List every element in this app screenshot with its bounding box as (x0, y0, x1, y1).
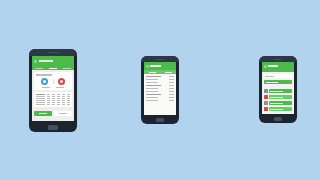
button[interactable] (144, 70, 160, 74)
button[interactable] (264, 101, 292, 105)
button[interactable] (146, 100, 174, 101)
button[interactable] (146, 76, 174, 77)
button[interactable] (264, 95, 292, 99)
button[interactable] (146, 82, 174, 83)
button[interactable] (34, 92, 72, 107)
button[interactable] (264, 89, 292, 93)
button[interactable] (146, 97, 174, 98)
button[interactable] (54, 111, 72, 116)
button[interactable]: Home (48, 125, 58, 130)
button[interactable] (32, 66, 46, 70)
button[interactable] (146, 94, 174, 95)
button[interactable]: Home (156, 118, 164, 122)
button[interactable] (146, 88, 174, 89)
button[interactable] (146, 79, 174, 80)
button[interactable] (264, 80, 292, 84)
button[interactable] (146, 91, 174, 92)
button[interactable] (146, 85, 174, 86)
button[interactable] (160, 70, 176, 74)
button[interactable] (34, 111, 52, 116)
button[interactable] (264, 74, 292, 78)
button[interactable] (264, 107, 292, 111)
button[interactable] (60, 66, 74, 70)
button[interactable]: Home (274, 117, 282, 121)
button[interactable] (34, 72, 72, 90)
button[interactable] (46, 66, 60, 70)
